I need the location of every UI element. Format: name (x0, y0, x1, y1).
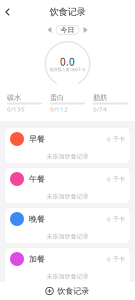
staticText: 0 千卡 (107, 215, 125, 223)
staticText: 午餐 (29, 174, 45, 184)
staticText: 饮食记录 (49, 6, 85, 18)
staticText: 蛋白 (50, 93, 64, 102)
staticText: 未添加饮食记录 (46, 193, 88, 200)
staticText: 0 千卡 (107, 255, 125, 263)
button[interactable]: 饮食记录 (0, 282, 135, 300)
button[interactable]: 午餐 (5, 168, 130, 203)
button[interactable]: 后一天 (79, 25, 92, 35)
staticText: 碳水 (7, 93, 21, 102)
button[interactable]: 晚餐 (5, 208, 130, 243)
staticText: 加餐 (29, 254, 45, 264)
staticText: 0 千卡 (107, 175, 125, 183)
staticText: 未添加饮食记录 (46, 273, 88, 280)
staticText: 饮食记录 (57, 286, 89, 296)
staticText: 0/135 (7, 105, 25, 113)
staticText: 早餐 (29, 134, 45, 144)
staticText: 未添加饮食记录 (46, 153, 88, 160)
button[interactable]: 加餐 (5, 248, 130, 283)
button[interactable]: 早餐 (5, 128, 130, 163)
staticText: 0.0 (60, 55, 75, 69)
staticText: 0/112 (50, 105, 68, 113)
staticText: 晚餐 (29, 214, 45, 224)
staticText: 0 千卡 (107, 135, 125, 143)
staticText: 脂肪 (93, 93, 107, 102)
staticText: 未添加饮食记录 (46, 233, 88, 240)
staticText: 0/74 (93, 105, 107, 113)
button[interactable]: 今日 (56, 25, 79, 34)
staticText: 今日 (60, 26, 74, 34)
button[interactable]: 返回 (0, 2, 15, 22)
button[interactable]: 前一天 (43, 25, 56, 35)
staticText: 推荐摄入量1800千卡 (49, 67, 85, 72)
